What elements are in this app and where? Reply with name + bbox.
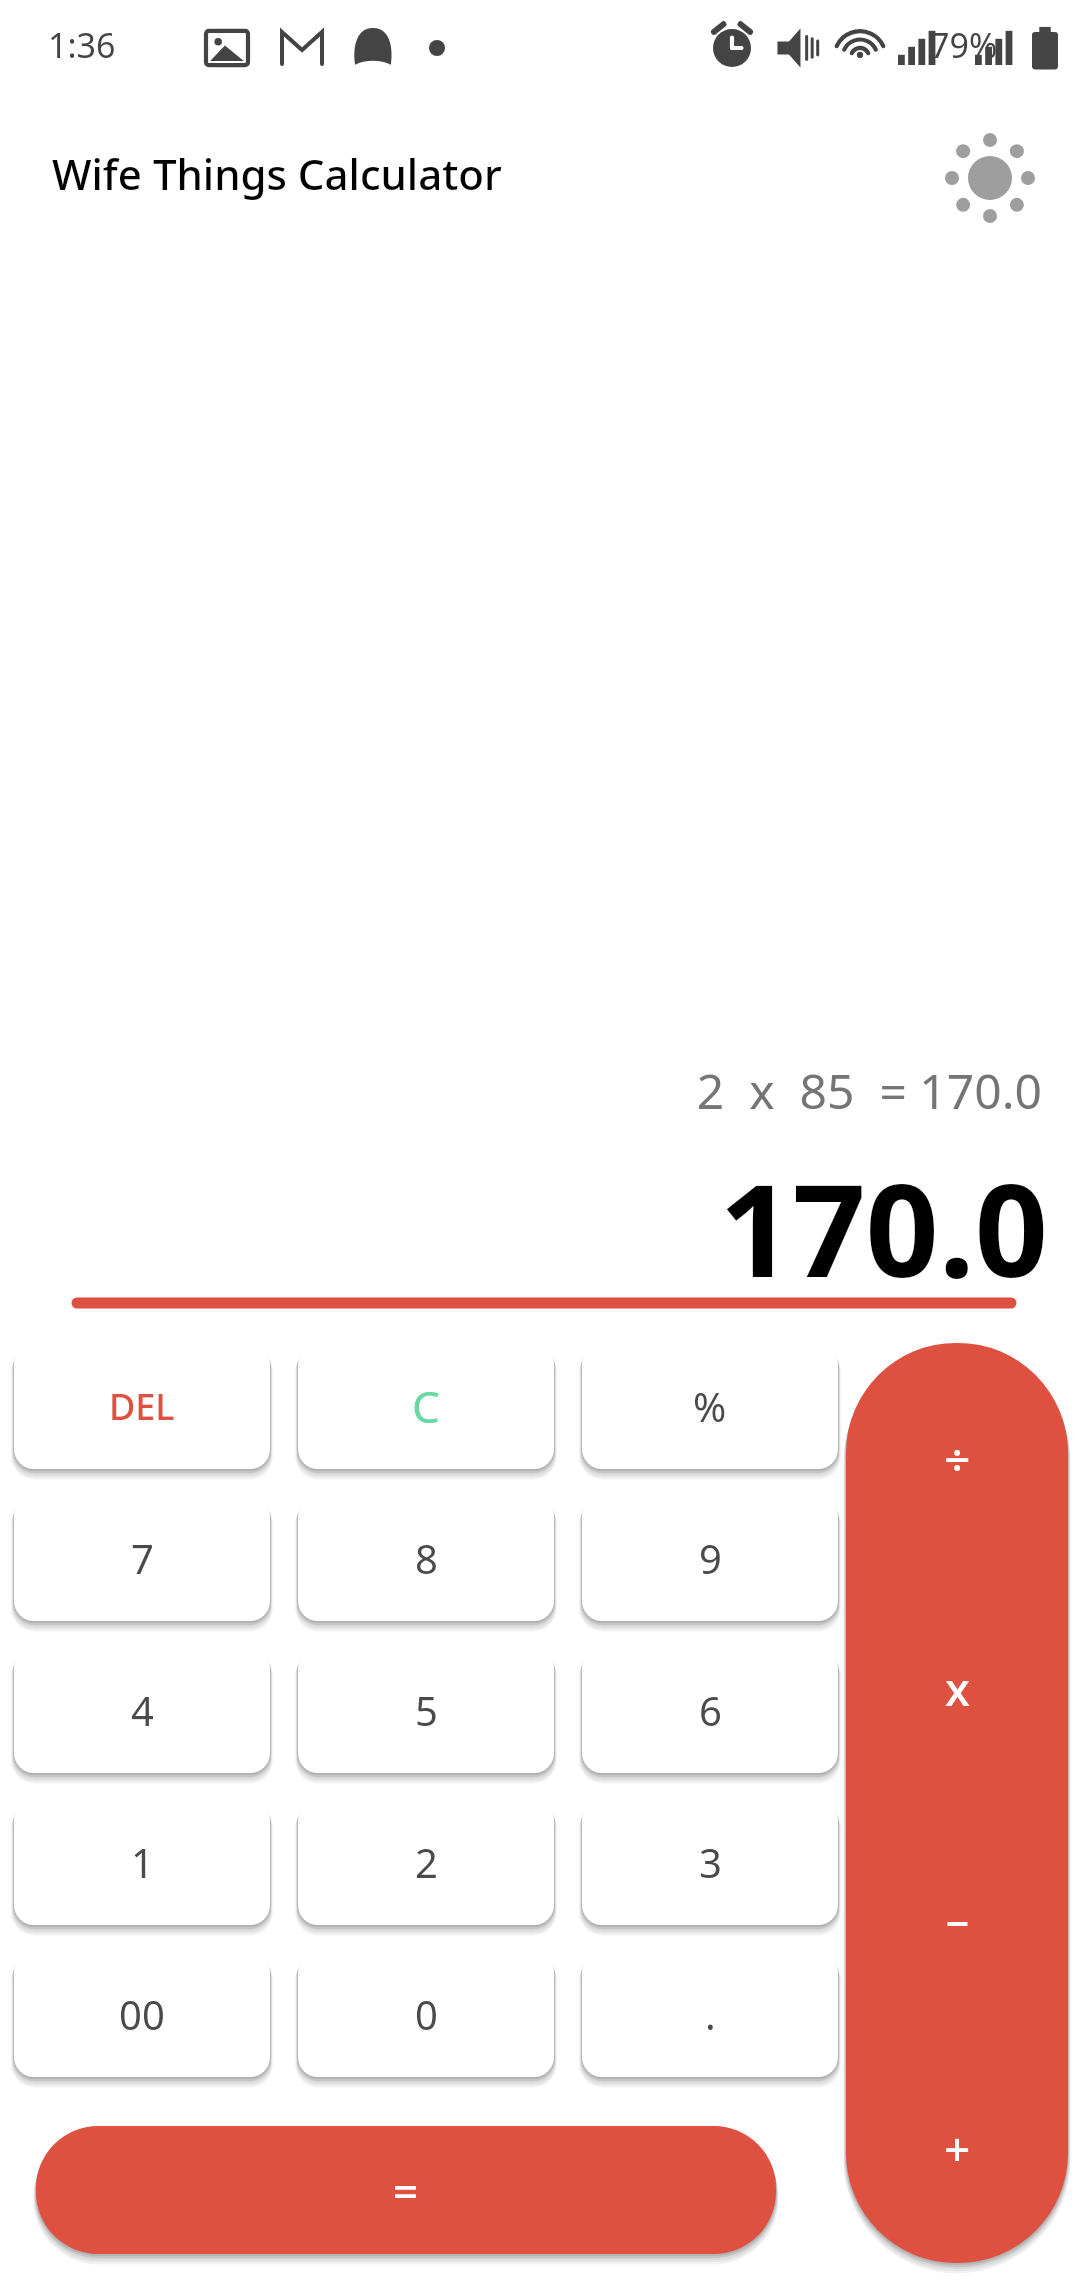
staticText: . (705, 1987, 716, 2041)
staticText: 2 (415, 1835, 438, 1889)
button[interactable]: 0 (298, 1951, 554, 2077)
staticText: C (412, 1376, 440, 1436)
staticText: 79% (930, 22, 998, 68)
button[interactable]: 1 (14, 1799, 270, 1925)
staticText: 2 x 85 = 170.0 (0, 1058, 1042, 1123)
button[interactable]: 4 (14, 1647, 270, 1773)
staticText: 3 (699, 1835, 722, 1889)
button[interactable]: 3 (582, 1799, 838, 1925)
staticText: 8 (415, 1531, 438, 1585)
staticText: 00 (119, 1987, 165, 2041)
staticText: – (946, 1887, 969, 1950)
staticText: 4 (131, 1683, 154, 1737)
button[interactable]: C (298, 1343, 554, 1469)
staticText: % (693, 1379, 727, 1433)
button[interactable]: Divide (846, 1343, 1068, 1573)
staticText: x (945, 1657, 970, 1720)
staticText: 6 (699, 1683, 722, 1737)
staticText: Wife Things Calculator (52, 145, 502, 202)
staticText: 1:36 (48, 22, 116, 68)
button[interactable]: = (36, 2126, 776, 2254)
staticText: 5 (415, 1683, 438, 1737)
button[interactable]: Subtract (846, 1803, 1068, 2033)
button[interactable]: DEL (14, 1343, 270, 1469)
staticText: + (944, 2117, 971, 2180)
staticText: = (393, 2160, 419, 2220)
button[interactable]: 9 (582, 1495, 838, 1621)
button[interactable]: . (582, 1951, 838, 2077)
button[interactable]: 6 (582, 1647, 838, 1773)
staticText: 170.0 (0, 1140, 1048, 1314)
button[interactable]: 7 (14, 1495, 270, 1621)
button[interactable]: Brightness (935, 123, 1045, 233)
staticText: 0 (415, 1987, 438, 2041)
button[interactable]: 8 (298, 1495, 554, 1621)
button[interactable]: 2 (298, 1799, 554, 1925)
staticText: 1 (131, 1835, 154, 1889)
staticText: ÷ (944, 1427, 971, 1490)
button[interactable]: 00 (14, 1951, 270, 2077)
button[interactable]: % (582, 1343, 838, 1469)
button[interactable]: Multiply (846, 1573, 1068, 1803)
button[interactable]: 5 (298, 1647, 554, 1773)
staticText: DEL (109, 1382, 175, 1431)
button[interactable]: Add (846, 2033, 1068, 2263)
staticText: 7 (131, 1531, 154, 1585)
staticText: 9 (699, 1531, 722, 1585)
